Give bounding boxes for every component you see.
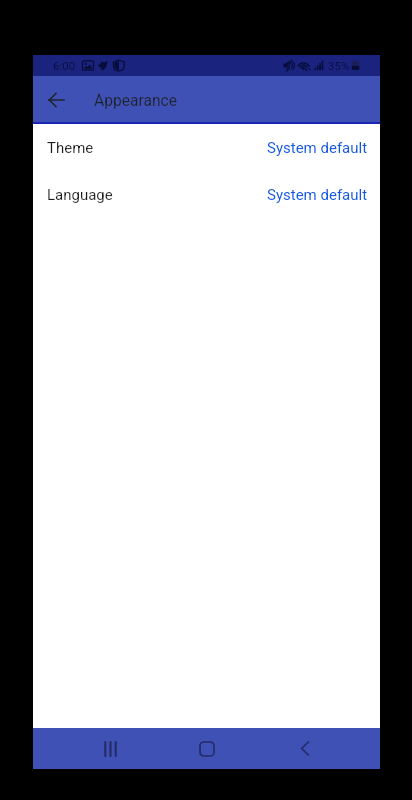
button[interactable]: Back xyxy=(281,728,329,769)
button[interactable]: Navigate up xyxy=(33,76,79,122)
button[interactable]: Home xyxy=(183,728,231,769)
staticText: 35% xyxy=(328,59,350,72)
staticText: 6:00 xyxy=(53,59,76,72)
staticText: System default xyxy=(267,139,368,157)
staticText: Theme xyxy=(47,139,94,157)
button[interactable]: Language xyxy=(33,171,380,218)
staticText: System default xyxy=(267,186,368,204)
button[interactable]: Recent apps xyxy=(84,728,132,769)
button[interactable]: Theme xyxy=(33,124,380,171)
staticText: Language xyxy=(47,186,113,204)
staticText: Appearance xyxy=(94,92,177,110)
